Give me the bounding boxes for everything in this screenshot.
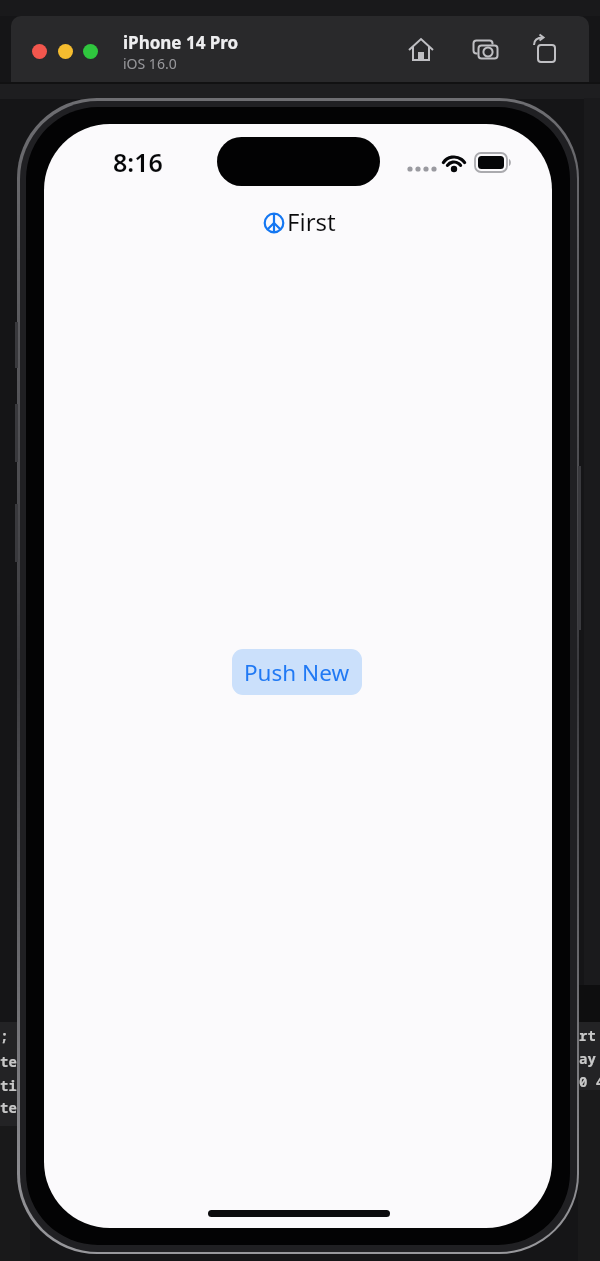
staticText: ay bbox=[579, 1049, 596, 1068]
button[interactable] bbox=[529, 34, 561, 66]
button[interactable] bbox=[405, 34, 437, 66]
staticText: iPhone 14 Pro bbox=[123, 31, 239, 54]
staticText: iOS 16.0 bbox=[123, 54, 177, 73]
staticText: Push New bbox=[244, 657, 350, 688]
button[interactable] bbox=[83, 44, 98, 59]
button[interactable]: Push New bbox=[232, 649, 362, 695]
staticText: te bbox=[0, 1052, 17, 1071]
staticText: ti bbox=[0, 1076, 17, 1095]
staticText: First bbox=[287, 205, 336, 238]
button[interactable] bbox=[470, 34, 502, 66]
button[interactable] bbox=[32, 44, 47, 59]
staticText: te bbox=[0, 1098, 17, 1117]
staticText: rt bbox=[579, 1026, 596, 1045]
staticText: 0 4 bbox=[579, 1072, 600, 1091]
button[interactable] bbox=[58, 44, 73, 59]
staticText: ; 0 bbox=[0, 1026, 26, 1045]
staticText: 8:16 bbox=[113, 145, 163, 179]
